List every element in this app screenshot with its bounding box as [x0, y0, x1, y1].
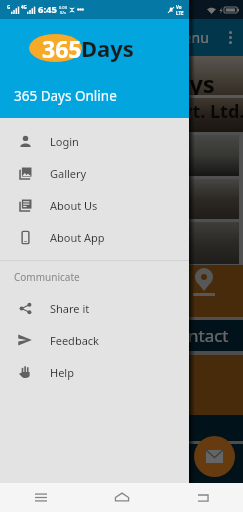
button[interactable]: Email: [194, 436, 235, 477]
button[interactable]: Recent apps: [26, 483, 56, 512]
staticText: Feedback: [50, 333, 99, 348]
staticText: 365Days: [116, 67, 215, 100]
button[interactable]: Share it: [0, 292, 189, 324]
button[interactable]: About App: [0, 221, 189, 253]
button[interactable]: About Us: [0, 189, 189, 221]
staticText: Communicate: [14, 270, 80, 284]
button[interactable]: Login: [0, 125, 189, 157]
staticText: Pvt. Ltd.: [171, 99, 243, 124]
staticText: Contact: [167, 324, 229, 347]
staticText: Help: [50, 365, 74, 380]
staticText: K/s: [60, 10, 66, 15]
staticText: Gallery: [50, 166, 87, 181]
staticText: 0.00: [59, 5, 67, 10]
button[interactable]: More options: [217, 19, 243, 56]
button[interactable]: Back: [188, 483, 218, 512]
staticText: Vo: [176, 4, 182, 10]
staticText: About Us: [50, 198, 98, 213]
button[interactable]: Help: [0, 356, 189, 388]
staticText: Menu: [171, 28, 209, 47]
staticText: LTE: [176, 10, 184, 16]
staticText: 6:45: [38, 3, 57, 16]
staticText: 365: [42, 33, 82, 64]
staticText: Days: [81, 33, 134, 63]
staticText: About App: [50, 230, 105, 245]
button[interactable]: Feedback: [0, 324, 189, 356]
staticText: 365 Days Online: [14, 87, 117, 105]
button[interactable]: Home: [107, 483, 137, 512]
staticText: G: [7, 4, 11, 10]
staticText: 4G: [21, 4, 27, 10]
button[interactable]: Gallery: [0, 157, 189, 189]
staticText: Share it: [50, 301, 90, 316]
staticText: Login: [50, 134, 79, 149]
